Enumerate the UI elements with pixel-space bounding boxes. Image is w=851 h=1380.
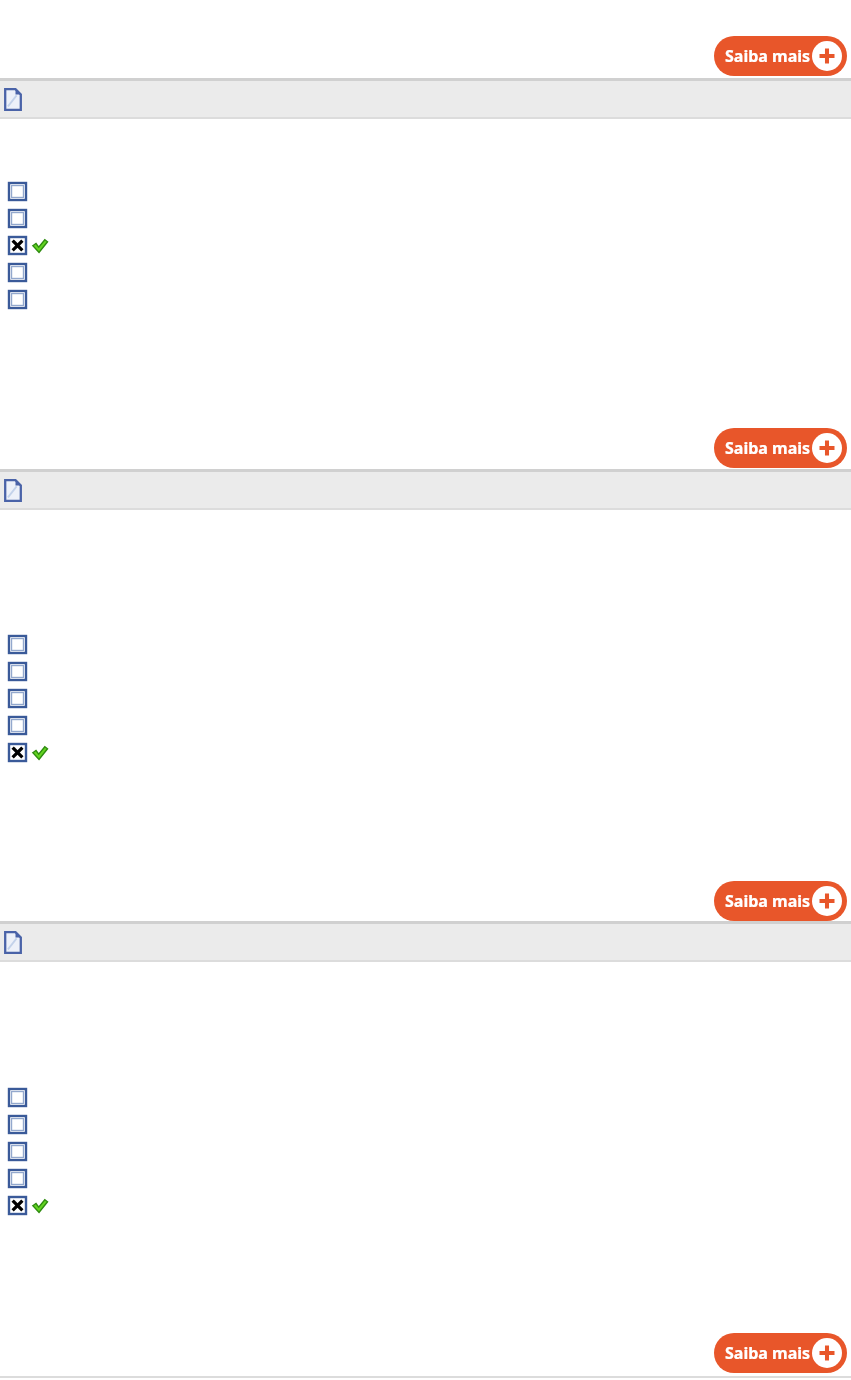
button[interactable]: Choice [0,260,851,284]
button[interactable]: Choice [0,659,851,683]
button[interactable]: Choice [0,713,851,737]
button[interactable]: Choice [0,179,851,203]
button[interactable]: Choice [0,1112,851,1136]
button[interactable]: Selected choice [0,1193,851,1217]
button[interactable]: Choice [0,1085,851,1109]
button[interactable]: Saiba mais [714,428,847,468]
button[interactable]: Choice [0,287,851,311]
staticText: Saiba mais [725,437,811,459]
button[interactable]: Document section [0,81,851,117]
staticText: Saiba mais [725,1342,811,1364]
button[interactable]: Choice [0,632,851,656]
staticText: Saiba mais [725,45,811,67]
button[interactable]: Saiba mais [714,1333,847,1373]
button[interactable]: Choice [0,1166,851,1190]
button[interactable]: Document section [0,472,851,508]
button[interactable]: Document section [0,924,851,960]
button[interactable]: Saiba mais [714,36,847,76]
button[interactable]: Choice [0,686,851,710]
button[interactable]: Selected choice [0,233,851,257]
button[interactable]: Choice [0,206,851,230]
button[interactable]: Selected choice [0,740,851,764]
button[interactable]: Choice [0,1139,851,1163]
staticText: Saiba mais [725,890,811,912]
button[interactable]: Saiba mais [714,881,847,921]
